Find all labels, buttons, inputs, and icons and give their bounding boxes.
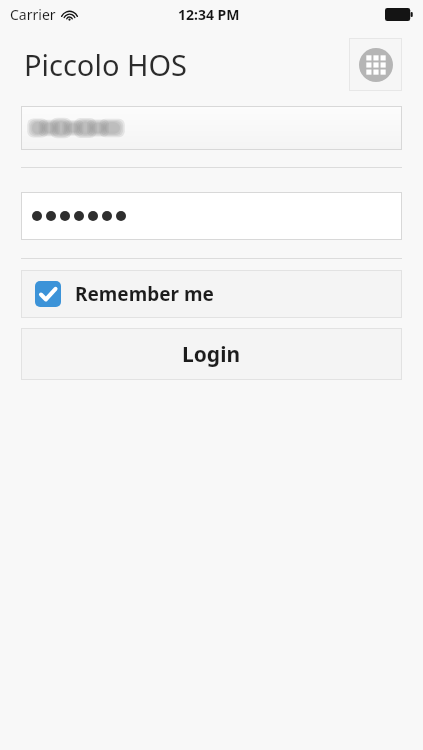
button[interactable]: Password xyxy=(21,192,402,240)
staticText: Remember me xyxy=(75,281,214,307)
staticText: Carrier xyxy=(10,5,56,24)
button[interactable]: App grid xyxy=(349,38,402,91)
staticText: Login xyxy=(182,340,241,369)
staticText: 12:34 PM xyxy=(178,5,240,24)
button[interactable]: Login xyxy=(21,328,402,380)
staticText: Piccolo HOS xyxy=(24,45,188,84)
button[interactable]: Remember me xyxy=(21,270,402,318)
button[interactable]: Username xyxy=(21,106,402,150)
